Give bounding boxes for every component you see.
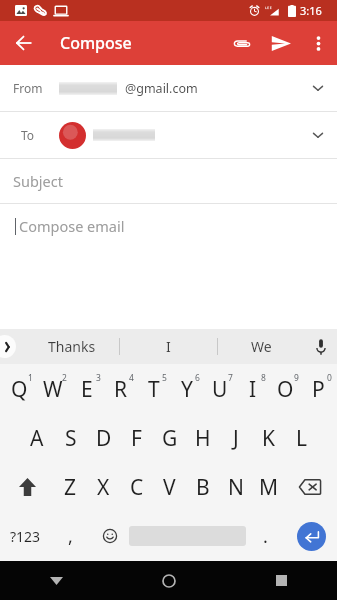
staticText: 5 bbox=[162, 372, 167, 384]
staticText: 3:16 bbox=[300, 3, 322, 18]
button[interactable]: F bbox=[120, 413, 153, 462]
staticText: We bbox=[251, 337, 272, 356]
staticText: E bbox=[81, 375, 93, 404]
button[interactable]: R bbox=[104, 364, 137, 413]
staticText: 4 bbox=[129, 372, 134, 384]
button[interactable]: W bbox=[36, 364, 70, 413]
button[interactable]: C bbox=[120, 462, 153, 511]
staticText: G bbox=[162, 424, 178, 453]
button[interactable]: L bbox=[285, 413, 318, 462]
staticText: R bbox=[114, 375, 128, 404]
button[interactable]: Voice input bbox=[304, 329, 337, 364]
staticText: A bbox=[30, 424, 44, 453]
button[interactable]: Y bbox=[170, 364, 203, 413]
button[interactable]: A bbox=[20, 413, 54, 462]
staticText: From bbox=[13, 80, 43, 96]
staticText: Y bbox=[181, 375, 193, 404]
staticText: P bbox=[312, 375, 325, 404]
staticText: U bbox=[212, 375, 228, 404]
button[interactable]: O bbox=[269, 364, 302, 413]
button[interactable]: N bbox=[219, 462, 252, 511]
staticText: @gmail.com bbox=[125, 80, 198, 97]
staticText: B bbox=[196, 473, 210, 502]
button[interactable]: Z bbox=[53, 462, 87, 511]
button[interactable]: To bbox=[0, 112, 337, 158]
staticText: N bbox=[228, 473, 244, 502]
button[interactable]: From bbox=[0, 65, 337, 111]
staticText: Q bbox=[11, 375, 28, 404]
button[interactable]: Delete bbox=[285, 462, 335, 511]
button[interactable]: Attach file bbox=[222, 21, 261, 65]
staticText: F bbox=[131, 424, 142, 453]
button[interactable]: S bbox=[54, 413, 87, 462]
button[interactable]: Emoji bbox=[90, 511, 129, 561]
button[interactable]: H bbox=[186, 413, 219, 462]
staticText: 7 bbox=[228, 372, 233, 384]
button[interactable]: B bbox=[186, 462, 219, 511]
staticText: 2 bbox=[62, 372, 67, 384]
staticText: K bbox=[262, 424, 275, 453]
button[interactable]: T bbox=[137, 364, 170, 413]
staticText: To bbox=[21, 127, 35, 143]
button[interactable]: U bbox=[203, 364, 236, 413]
button[interactable]: Recent apps bbox=[225, 561, 337, 600]
staticText: L bbox=[296, 424, 308, 453]
staticText: I bbox=[249, 375, 257, 404]
staticText: C bbox=[130, 473, 144, 502]
staticText: W bbox=[43, 375, 63, 404]
staticText: S bbox=[65, 424, 77, 453]
button[interactable]: Expand recipients bbox=[303, 120, 333, 150]
staticText: M bbox=[259, 473, 279, 502]
button[interactable]: J bbox=[219, 413, 252, 462]
button[interactable]: Subject bbox=[0, 159, 337, 203]
staticText: 6 bbox=[195, 372, 200, 384]
button[interactable]: ?123 bbox=[0, 511, 51, 561]
button[interactable]: M bbox=[252, 462, 285, 511]
button[interactable]: Expand toolbar bbox=[0, 329, 24, 364]
button[interactable]: Thanks bbox=[24, 329, 119, 364]
button[interactable]: P bbox=[302, 364, 335, 413]
staticText: Z bbox=[64, 473, 77, 502]
button[interactable]: G bbox=[153, 413, 186, 462]
staticText: Thanks bbox=[48, 337, 96, 356]
button[interactable]: D bbox=[87, 413, 120, 462]
staticText: O bbox=[277, 375, 294, 404]
staticText: Subject bbox=[13, 171, 63, 191]
staticText: 0 bbox=[327, 372, 332, 384]
staticText: V bbox=[163, 473, 176, 502]
staticText: T bbox=[148, 375, 160, 404]
button[interactable]: V bbox=[153, 462, 186, 511]
staticText: 3 bbox=[96, 372, 101, 384]
button[interactable]: Space bbox=[129, 511, 246, 561]
button[interactable]: Enter bbox=[285, 511, 337, 561]
button[interactable]: Home bbox=[113, 561, 225, 600]
staticText: Compose bbox=[60, 32, 132, 54]
button[interactable]: , bbox=[51, 511, 90, 561]
staticText: H bbox=[195, 424, 211, 453]
button[interactable]: Expand from bbox=[303, 73, 333, 103]
staticText: . bbox=[263, 524, 268, 549]
button[interactable]: More options bbox=[300, 21, 337, 65]
button[interactable]: X bbox=[87, 462, 120, 511]
staticText: D bbox=[96, 424, 112, 453]
button[interactable]: Back bbox=[0, 561, 113, 600]
staticText: 1 bbox=[28, 372, 33, 384]
staticText: , bbox=[68, 524, 73, 549]
button[interactable]: Compose email bbox=[0, 204, 337, 248]
button[interactable]: We bbox=[218, 329, 304, 364]
staticText: 9 bbox=[294, 372, 299, 384]
staticText: ?123 bbox=[10, 527, 41, 546]
button[interactable]: I bbox=[236, 364, 269, 413]
button[interactable]: Back bbox=[0, 21, 48, 65]
staticText: X bbox=[97, 473, 110, 502]
button[interactable]: Q bbox=[2, 364, 36, 413]
staticText: I bbox=[166, 337, 171, 356]
button[interactable]: I bbox=[120, 329, 217, 364]
button[interactable]: E bbox=[70, 364, 104, 413]
button[interactable]: Send bbox=[261, 21, 300, 65]
staticText: Compose email bbox=[19, 216, 125, 236]
button[interactable]: . bbox=[246, 511, 285, 561]
staticText: J bbox=[233, 424, 239, 453]
button[interactable]: Shift bbox=[2, 462, 53, 511]
button[interactable]: K bbox=[252, 413, 285, 462]
